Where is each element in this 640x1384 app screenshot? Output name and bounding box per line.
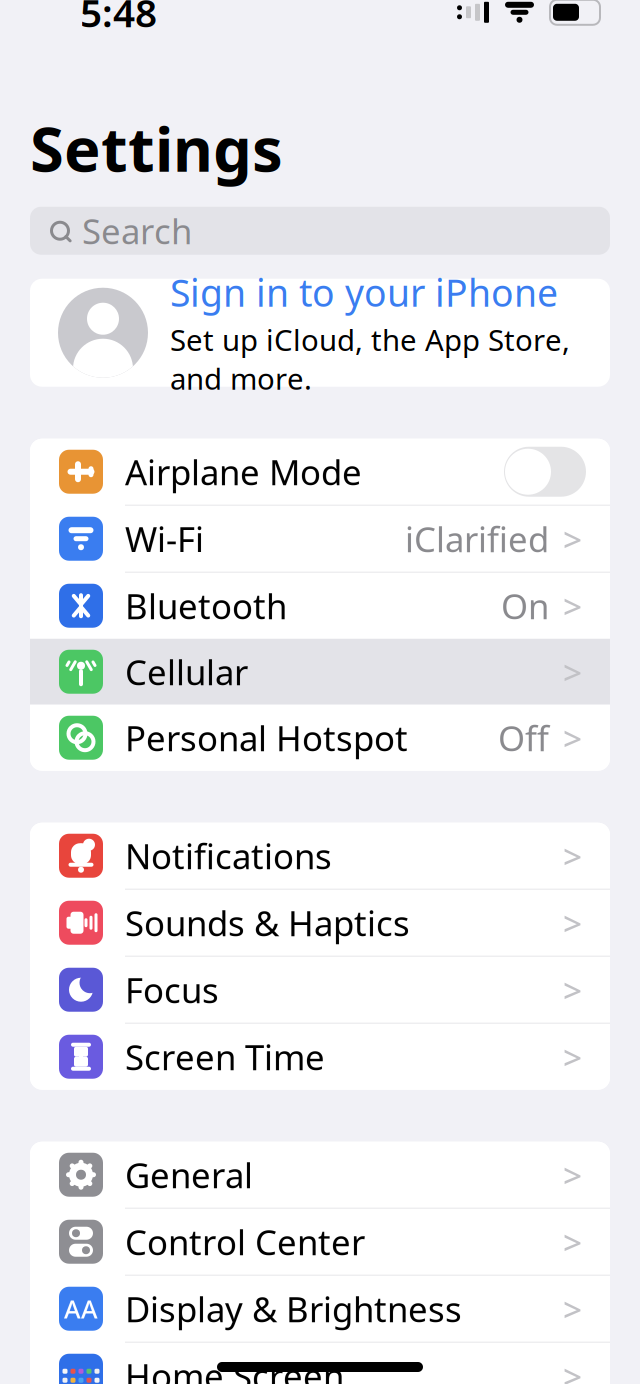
- staticText: Set up iCloud, the App Store, and more.: [170, 320, 570, 398]
- staticText: 5:48: [80, 0, 157, 38]
- staticText: Search: [82, 208, 192, 254]
- button[interactable]: Bluetooth: [30, 573, 610, 639]
- button[interactable]: Sounds & Haptics: [30, 890, 610, 956]
- staticText: Settings: [30, 107, 283, 189]
- staticText: AA: [64, 1292, 98, 1325]
- staticText: Control Center: [125, 1219, 365, 1265]
- staticText: >: [563, 1035, 582, 1079]
- button[interactable]: Control Center: [30, 1209, 610, 1275]
- staticText: Sounds & Haptics: [125, 900, 410, 946]
- button[interactable]: Notifications: [30, 823, 610, 889]
- staticText: iClarified: [405, 516, 549, 562]
- staticText: >: [563, 584, 582, 628]
- button[interactable]: AA: [30, 1276, 610, 1342]
- button[interactable]: Screen Time: [30, 1024, 610, 1090]
- staticText: Screen Time: [125, 1034, 325, 1080]
- staticText: Airplane Mode: [125, 449, 362, 495]
- staticText: >: [563, 1220, 582, 1264]
- staticText: Off: [498, 715, 549, 761]
- button[interactable]: Search: [0, 207, 640, 255]
- staticText: >: [563, 1287, 582, 1331]
- staticText: >: [563, 834, 582, 878]
- staticText: Display & Brightness: [125, 1286, 462, 1332]
- staticText: >: [563, 901, 582, 945]
- staticText: >: [563, 517, 582, 561]
- staticText: Cellular: [125, 649, 248, 695]
- staticText: Notifications: [125, 833, 332, 879]
- button[interactable]: Cellular: [30, 639, 610, 705]
- staticText: Focus: [125, 967, 219, 1013]
- staticText: >: [563, 716, 582, 760]
- staticText: >: [563, 1153, 582, 1197]
- button[interactable]: Personal Hotspot: [30, 705, 610, 771]
- staticText: General: [125, 1152, 253, 1198]
- button[interactable]: Wi-Fi: [30, 506, 610, 572]
- staticText: Personal Hotspot: [125, 715, 408, 761]
- button[interactable]: Focus: [30, 957, 610, 1023]
- button[interactable]: Home Screen: [30, 1343, 610, 1384]
- staticText: Sign in to your iPhone: [170, 267, 558, 317]
- button[interactable]: General: [30, 1142, 610, 1208]
- staticText: Wi-Fi: [125, 516, 204, 562]
- staticText: >: [563, 968, 582, 1012]
- staticText: >: [563, 1354, 582, 1384]
- staticText: >: [563, 650, 582, 694]
- staticText: Bluetooth: [125, 583, 287, 629]
- button[interactable]: Airplane Mode: [30, 439, 610, 505]
- staticText: On: [501, 583, 549, 629]
- staticText: Home Screen: [125, 1353, 344, 1384]
- button[interactable]: Sign in to your iPhone: [0, 279, 640, 387]
